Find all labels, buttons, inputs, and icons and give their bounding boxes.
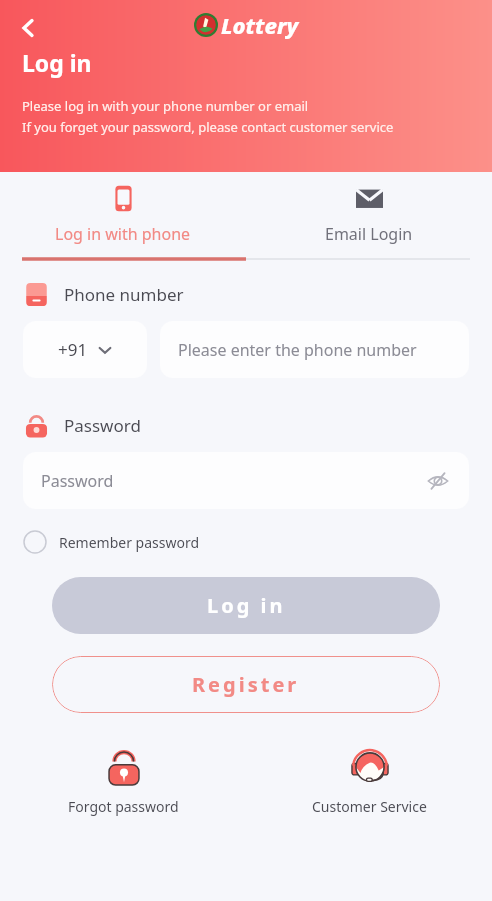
button[interactable]: Show password [421,464,455,498]
staticText: Password [64,414,141,437]
staticText: If you forget your password, please cont… [22,118,394,136]
staticText: Customer Service [312,797,427,816]
button[interactable]: Remember password [23,530,208,554]
button[interactable]: Register [52,656,440,713]
staticText: +91 [58,338,88,361]
staticText: Password [41,470,114,492]
staticText: Log in with phone [55,223,191,245]
staticText: Forgot password [68,797,179,816]
button[interactable]: Customer Service [306,739,433,822]
staticText: Phone number [64,283,184,306]
button[interactable]: Log in [52,577,440,634]
button[interactable]: Log in with phone [0,172,246,257]
staticText: Please enter the phone number [178,339,417,361]
staticText: Email Login [325,223,413,245]
staticText: Register [192,671,300,698]
staticText: Remember password [59,533,200,552]
button[interactable]: Forgot password [62,739,185,822]
staticText: Please log in with your phone number or … [22,97,309,115]
button[interactable]: Back [6,6,50,50]
button[interactable]: Please enter the phone number [160,321,469,378]
button[interactable]: Password [23,452,469,509]
button[interactable]: +91 [23,321,147,378]
staticText: Lottery [221,10,299,40]
button[interactable]: Email Login [246,172,492,257]
staticText: Log in [22,47,92,78]
staticText: Log in [207,592,286,619]
